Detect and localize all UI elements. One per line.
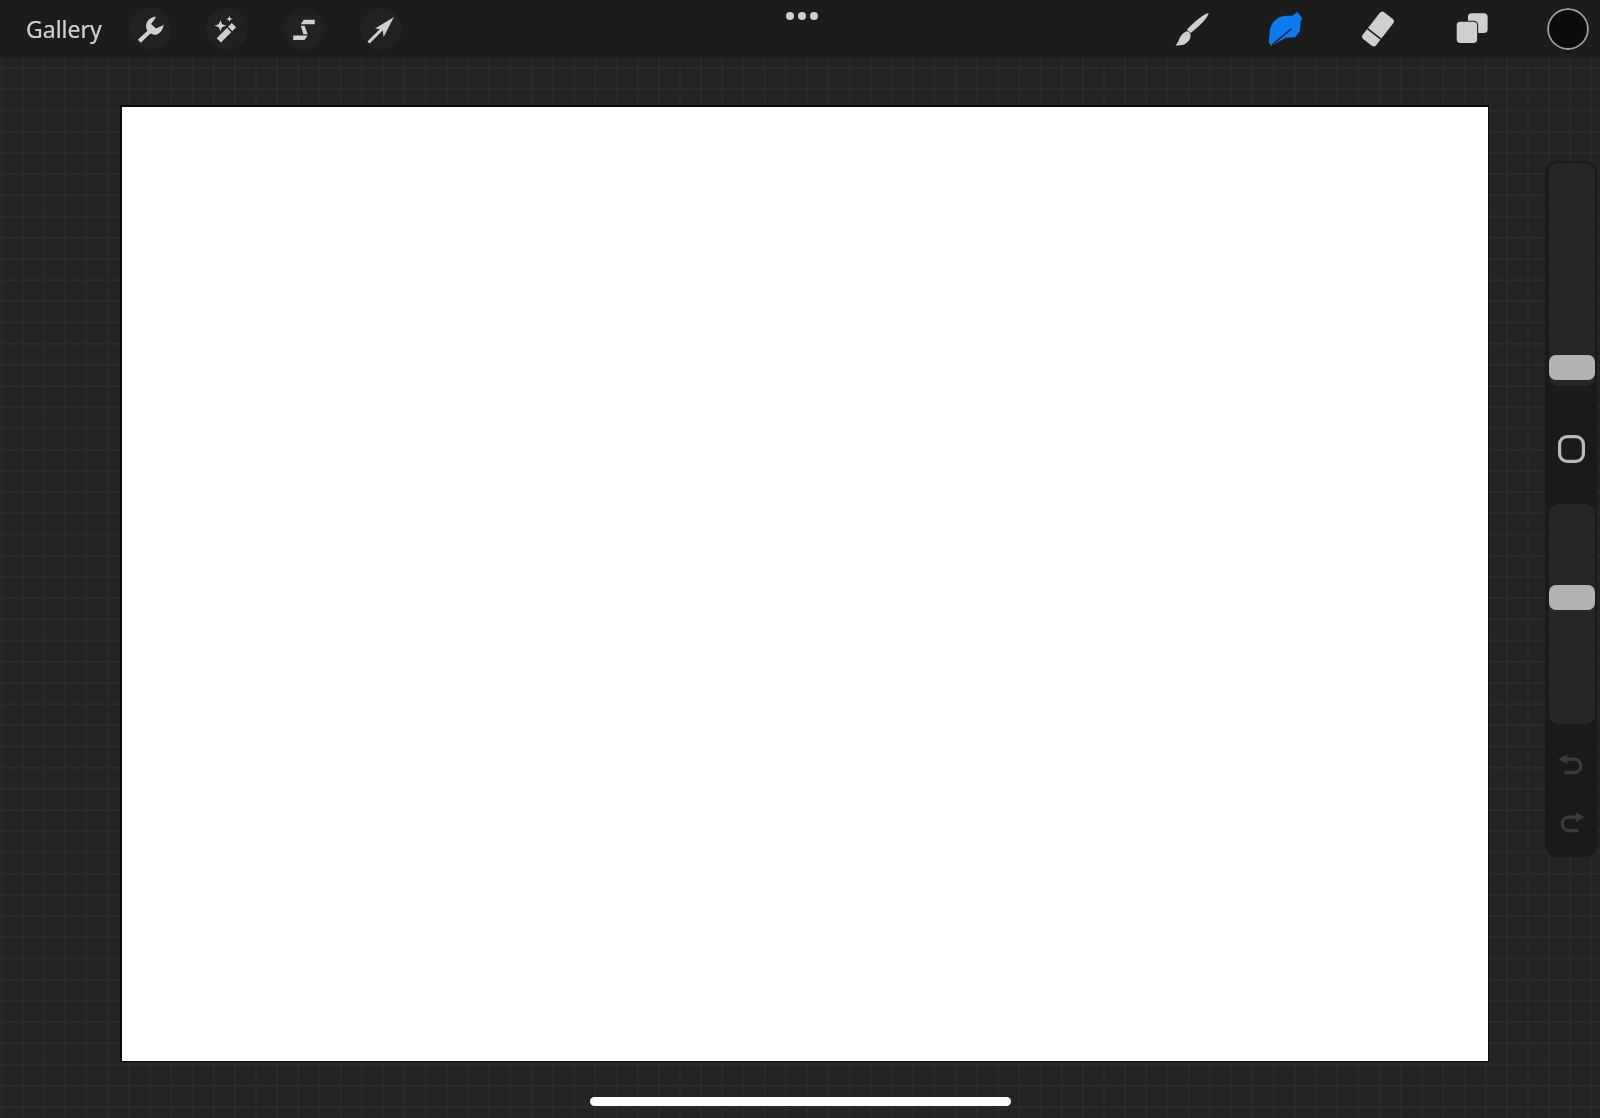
button[interactable]: Brush size	[1549, 163, 1595, 386]
button[interactable]: Redo	[1558, 809, 1585, 836]
button[interactable]: Layers	[1453, 10, 1491, 48]
button[interactable]: Smudge	[1266, 10, 1304, 48]
button[interactable]: Opacity	[1549, 504, 1595, 724]
button[interactable]: Paint	[1173, 10, 1211, 48]
button[interactable]: Undo	[1558, 751, 1585, 778]
button[interactable]: Gallery	[26, 13, 102, 44]
button[interactable]: Transform	[360, 8, 402, 50]
button[interactable]: Color	[1547, 8, 1589, 50]
button[interactable]: Selection	[283, 8, 325, 50]
button[interactable]: More	[784, 12, 820, 20]
button[interactable]: Actions	[129, 8, 171, 50]
button[interactable]: Adjustments	[206, 8, 248, 50]
button[interactable]: Modify	[1558, 435, 1585, 463]
button[interactable]: Erase	[1359, 10, 1397, 48]
